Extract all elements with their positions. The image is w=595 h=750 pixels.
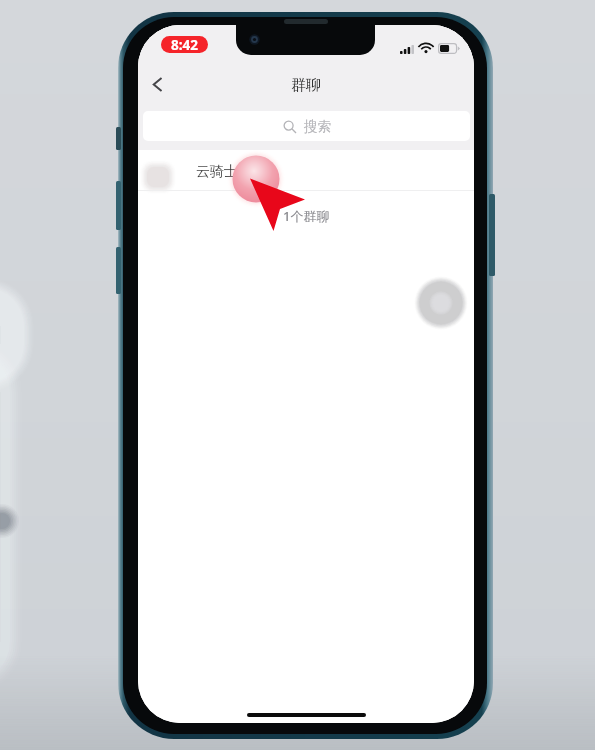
staticText: 1个群聊	[283, 207, 330, 225]
staticText: 群聊	[291, 76, 321, 95]
button[interactable]: Assistive Touch	[413, 275, 469, 331]
button[interactable]: Back	[143, 69, 171, 99]
staticText: 云骑士	[196, 163, 238, 181]
button[interactable]: 云骑士	[138, 150, 474, 191]
staticText: 搜索	[304, 118, 331, 135]
button[interactable]: 搜索	[143, 111, 470, 141]
staticText: 8:42	[171, 36, 198, 53]
